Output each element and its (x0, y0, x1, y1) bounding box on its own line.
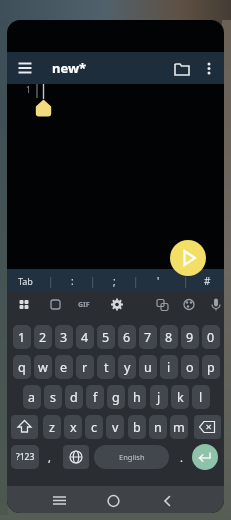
button[interactable]: 5 (97, 325, 115, 349)
button[interactable]: ?123 (11, 445, 39, 469)
staticText: 5 (102, 329, 110, 346)
staticText: 1 (18, 329, 26, 346)
button[interactable]: o (181, 355, 199, 379)
button[interactable]: k (171, 385, 189, 409)
staticText: v (112, 419, 119, 436)
button[interactable]: Tab (15, 269, 35, 292)
button[interactable]: j (150, 385, 168, 409)
button[interactable]: n (149, 415, 167, 439)
staticText: f (93, 389, 98, 406)
staticText: | (133, 274, 139, 288)
staticText: t (104, 359, 109, 376)
button[interactable]: p (202, 355, 220, 379)
staticText: z (49, 419, 55, 436)
button[interactable]: : (62, 269, 82, 292)
button[interactable]: 8 (160, 325, 178, 349)
button[interactable]: i (160, 355, 178, 379)
staticText: 6 (123, 329, 131, 346)
button[interactable] (11, 415, 38, 439)
staticText: # (204, 274, 211, 288)
button[interactable]: 0 (202, 325, 220, 349)
button[interactable]: g (107, 385, 125, 409)
staticText: x (70, 419, 77, 436)
staticText: Tab (18, 275, 33, 287)
button[interactable]: 4 (76, 325, 94, 349)
button[interactable]: x (64, 415, 82, 439)
button[interactable]: l (192, 385, 210, 409)
button[interactable]: 3 (55, 325, 73, 349)
button[interactable]: | (83, 269, 103, 292)
button[interactable]: u (139, 355, 157, 379)
button[interactable]: 6 (118, 325, 136, 349)
staticText: 9 (186, 329, 194, 346)
staticText: b (133, 419, 141, 436)
button[interactable]: ' (148, 269, 168, 292)
button[interactable]: ; (104, 269, 124, 292)
button[interactable]: s (44, 385, 62, 409)
staticText: 0 (207, 329, 215, 346)
staticText: r (82, 359, 88, 376)
staticText: | (183, 274, 189, 288)
button[interactable]: t (97, 355, 115, 379)
button[interactable] (63, 445, 89, 469)
button[interactable]: , (43, 445, 55, 469)
button[interactable] (192, 444, 218, 470)
button[interactable]: w (34, 355, 52, 379)
staticText: 7 (144, 329, 152, 346)
staticText: l (199, 389, 203, 406)
staticText: 2 (39, 329, 47, 346)
button[interactable]: f (86, 385, 104, 409)
staticText: j (157, 389, 161, 406)
staticText: ; (113, 274, 116, 288)
staticText: k (177, 389, 184, 406)
staticText: | (90, 274, 96, 288)
button[interactable]: r (76, 355, 94, 379)
button[interactable]: h (128, 385, 146, 409)
button[interactable] (194, 415, 221, 439)
staticText: 4 (81, 329, 89, 346)
button[interactable]: b (128, 415, 146, 439)
staticText: p (207, 359, 215, 376)
button[interactable]: 7 (139, 325, 157, 349)
button[interactable]: 2 (34, 325, 52, 349)
button[interactable]: e (55, 355, 73, 379)
button[interactable]: z (43, 415, 61, 439)
staticText: . (180, 450, 183, 465)
staticText: d (70, 389, 78, 406)
staticText: g (112, 389, 120, 406)
staticText: new* (52, 59, 87, 77)
button[interactable]: a (23, 385, 41, 409)
button[interactable] (170, 240, 206, 276)
button[interactable]: v (106, 415, 124, 439)
staticText: ?123 (16, 451, 35, 463)
button[interactable]: d (65, 385, 83, 409)
button[interactable]: 9 (181, 325, 199, 349)
button[interactable]: 1 (13, 325, 31, 349)
staticText: , (48, 450, 51, 465)
button[interactable]: y (118, 355, 136, 379)
button[interactable]: m (170, 415, 188, 439)
staticText: u (144, 359, 152, 376)
button[interactable]: | (176, 269, 196, 292)
button[interactable]: # (197, 269, 217, 292)
button[interactable] (11, 54, 39, 82)
staticText: e (60, 359, 68, 376)
staticText: 3 (60, 329, 68, 346)
staticText: o (186, 359, 194, 376)
button[interactable]: English (94, 445, 169, 469)
staticText: y (124, 359, 131, 376)
staticText: a (28, 389, 36, 406)
button[interactable] (197, 54, 221, 82)
button[interactable]: c (85, 415, 103, 439)
button[interactable] (168, 54, 196, 82)
button[interactable]: q (13, 355, 31, 379)
staticText: m (173, 419, 185, 436)
staticText: ' (157, 274, 160, 288)
button[interactable]: | (41, 269, 61, 292)
button[interactable]: . (175, 445, 187, 469)
staticText: n (154, 419, 162, 436)
button[interactable]: | (126, 269, 146, 292)
staticText: : (71, 274, 74, 288)
staticText: h (133, 389, 141, 406)
staticText: s (50, 389, 56, 406)
